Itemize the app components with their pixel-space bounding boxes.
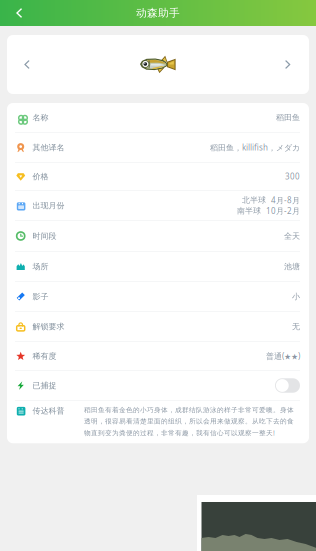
staticText: 动森助手: [136, 6, 180, 19]
staticText: 时间段: [32, 231, 56, 241]
staticText: 名称: [32, 113, 48, 122]
staticText: 场所: [32, 262, 48, 271]
staticText: 10月-2月: [266, 205, 300, 216]
button[interactable]: 时间段: [7, 221, 309, 251]
staticText: 解锁要求: [32, 322, 64, 331]
staticText: 小: [292, 292, 300, 301]
button[interactable]: 稀有度: [7, 342, 309, 370]
staticText: 南半球: [237, 206, 261, 216]
button[interactable]: 场所: [7, 252, 309, 281]
staticText: 无: [292, 322, 300, 331]
staticText: 池塘: [284, 262, 300, 271]
button[interactable]: 出现月份: [7, 191, 309, 220]
button[interactable]: 解锁要求: [7, 312, 309, 341]
staticText: 4月-8月: [271, 195, 300, 205]
staticText: 价格: [32, 172, 48, 181]
staticText: 出现月份: [32, 201, 64, 210]
staticText: 全天: [284, 231, 300, 241]
staticText: 北半球: [242, 195, 266, 205]
staticText: 稻田鱼: [276, 113, 300, 122]
staticText: 普通(★★): [266, 351, 300, 361]
staticText: 传达科普: [32, 406, 64, 416]
button[interactable]: 影子: [7, 282, 309, 311]
button[interactable]: 下一个: [269, 35, 309, 94]
button[interactable]: 已捕捉: [7, 371, 309, 400]
button[interactable]: 返回: [0, 0, 40, 26]
staticText: 稻田鱼，killifish，メダカ: [210, 142, 300, 153]
staticText: 影子: [32, 292, 48, 301]
staticText: 稀有度: [32, 351, 56, 361]
staticText: 300: [285, 171, 300, 182]
button[interactable]: 已捕捉: [275, 378, 300, 393]
staticText: 已捕捉: [32, 381, 56, 390]
button[interactable]: 其他译名: [7, 133, 309, 162]
staticText: 其他译名: [32, 143, 64, 152]
button[interactable]: 名称: [7, 103, 309, 132]
button[interactable]: 价格: [7, 163, 309, 190]
staticText: 稻田鱼有着金色的小巧身体，成群结队游泳的样子非常可爱噢。身体透明，很容易看清楚里…: [84, 406, 294, 437]
button[interactable]: 上一个: [7, 35, 47, 94]
